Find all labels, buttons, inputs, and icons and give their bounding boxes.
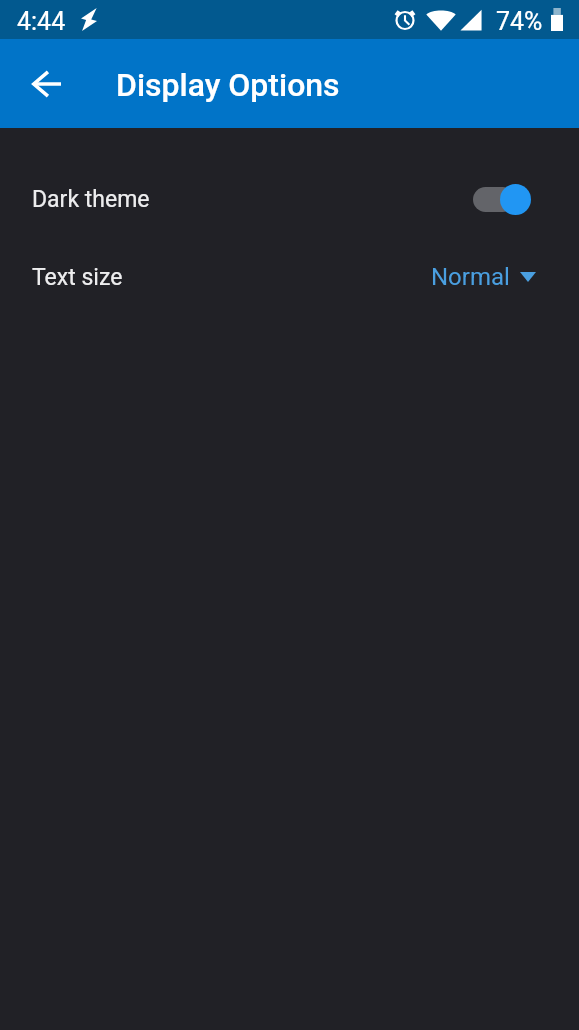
- staticText: Normal: [431, 263, 510, 291]
- staticText: 74%: [496, 7, 543, 36]
- staticText: Text size: [32, 264, 123, 291]
- staticText: Display Options: [116, 66, 340, 104]
- button[interactable]: Dark theme: [0, 167, 579, 231]
- staticText: Dark theme: [32, 186, 150, 213]
- button[interactable]: Text size: [0, 245, 579, 309]
- button[interactable]: Navigate up: [18, 56, 74, 112]
- button[interactable]: Dark theme toggle: [473, 183, 531, 215]
- staticText: 4:44: [17, 7, 66, 36]
